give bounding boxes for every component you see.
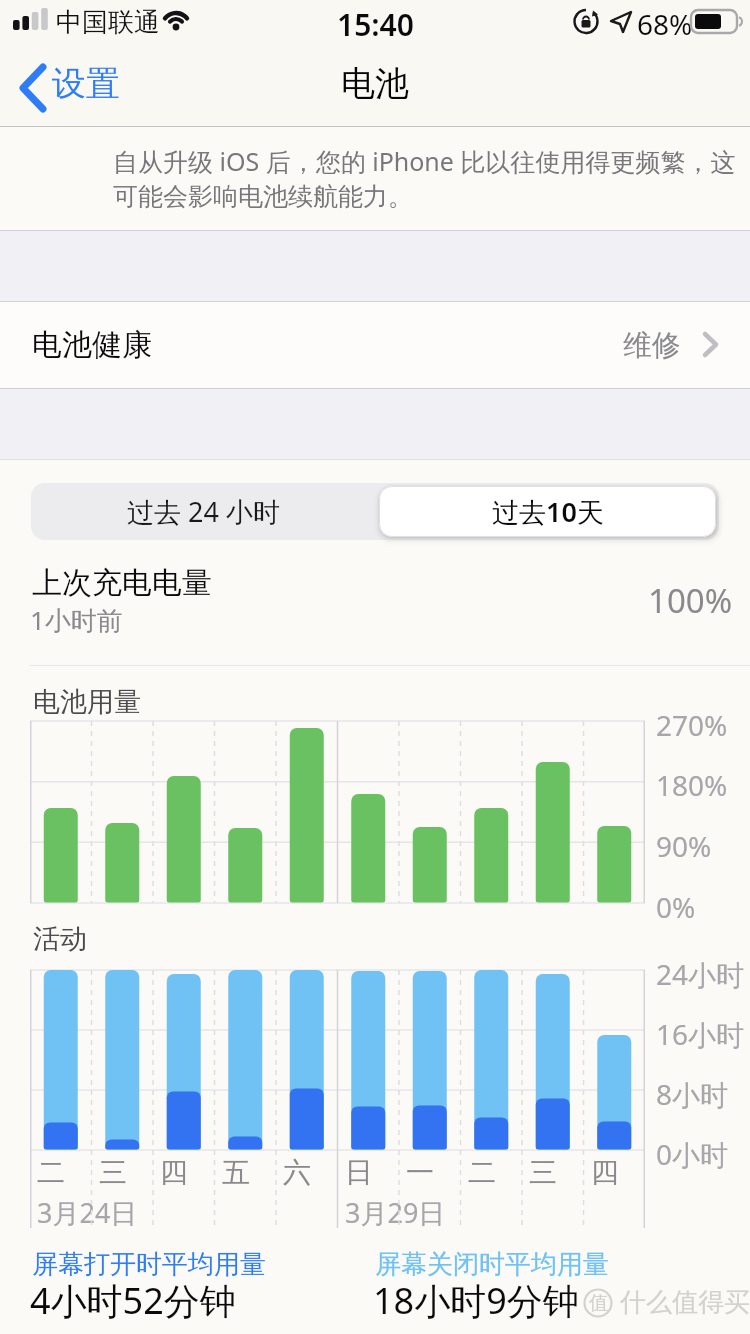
staticText: 0小时 [656, 1135, 729, 1173]
staticText: 1小时前 [30, 602, 123, 638]
staticText: 18小时9分钟 [373, 1276, 579, 1325]
button[interactable] [10, 60, 140, 116]
staticText: 六 [283, 1155, 311, 1190]
staticText: 3月29日 [345, 1194, 446, 1231]
button[interactable]: 过去10天 [379, 486, 716, 537]
staticText: 4小时52分钟 [30, 1276, 236, 1325]
staticText: 上次充电电量 [32, 564, 212, 602]
staticText: 16小时 [656, 1015, 745, 1053]
button[interactable] [0, 302, 750, 388]
staticText: 屏幕打开时平均用量 [32, 1248, 266, 1281]
staticText: 68% [637, 5, 693, 43]
staticText: 180% [656, 766, 728, 804]
staticText: 四 [160, 1155, 188, 1190]
staticText: 电池健康 [32, 326, 152, 364]
staticText: 自从升级 iOS 后，您的 iPhone 比以往使用得更频繁，这 [113, 144, 736, 178]
staticText: 270% [656, 706, 728, 744]
staticText: 90% [656, 827, 712, 865]
staticText: 中国联通 [56, 6, 160, 39]
staticText: 设置 [52, 62, 120, 105]
staticText: 什么值得买 [620, 1286, 750, 1319]
staticText: 值 [589, 1291, 608, 1315]
staticText: 3月24日 [37, 1194, 138, 1231]
staticText: 可能会影响电池续航能力。 [113, 181, 413, 212]
staticText: 15:40 [337, 4, 414, 45]
staticText: 过去10天 [492, 493, 604, 530]
staticText: 100% [648, 578, 733, 623]
staticText: 电池用量 [33, 685, 141, 719]
staticText: 0% [656, 888, 696, 926]
staticText: 三 [529, 1155, 557, 1190]
staticText: 活动 [33, 922, 87, 956]
button[interactable]: 过去 24 小时 [31, 483, 375, 540]
staticText: 屏幕关闭时平均用量 [375, 1248, 609, 1281]
staticText: 维修 [623, 327, 681, 364]
staticText: 一 [406, 1155, 434, 1190]
staticText: 24小时 [656, 955, 745, 993]
staticText: 五 [222, 1155, 250, 1190]
staticText: 过去 24 小时 [127, 493, 280, 530]
staticText: 三 [99, 1155, 127, 1190]
staticText: 日 [345, 1155, 373, 1190]
staticText: 电池 [341, 62, 409, 105]
staticText: 二 [37, 1155, 65, 1190]
staticText: 四 [591, 1155, 619, 1190]
staticText: 8小时 [656, 1075, 729, 1113]
staticText: 二 [468, 1155, 496, 1190]
